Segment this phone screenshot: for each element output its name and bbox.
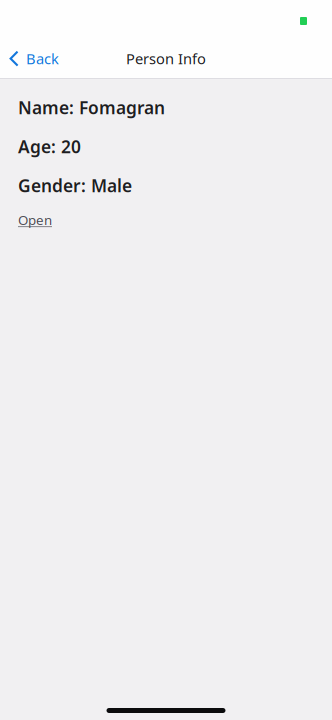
button[interactable]: Open [18, 197, 58, 231]
staticText: Gender: Male [18, 174, 132, 197]
staticText: Age: 20 [18, 135, 81, 158]
staticText: Back [26, 49, 59, 68]
staticText: Name: Fomagran [18, 96, 165, 119]
button[interactable]: Back [0, 44, 69, 78]
staticText: Open [18, 211, 52, 229]
staticText: Person Info [126, 49, 206, 68]
